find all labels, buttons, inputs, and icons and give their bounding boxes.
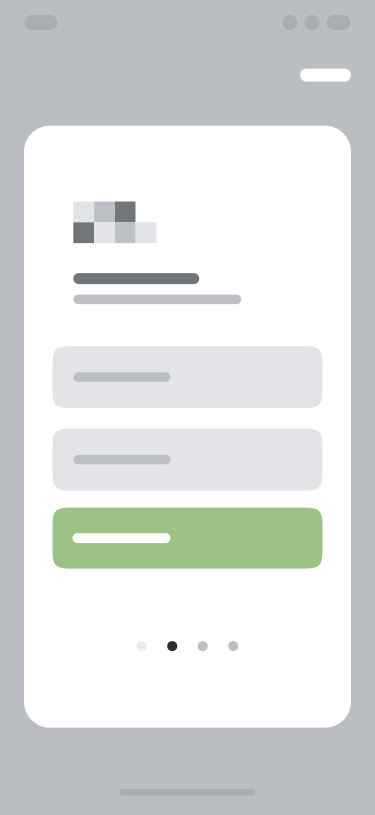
button[interactable]: Sign in	[52, 508, 322, 569]
button[interactable]: Text field	[52, 346, 322, 408]
button[interactable]: Text field	[52, 429, 322, 491]
